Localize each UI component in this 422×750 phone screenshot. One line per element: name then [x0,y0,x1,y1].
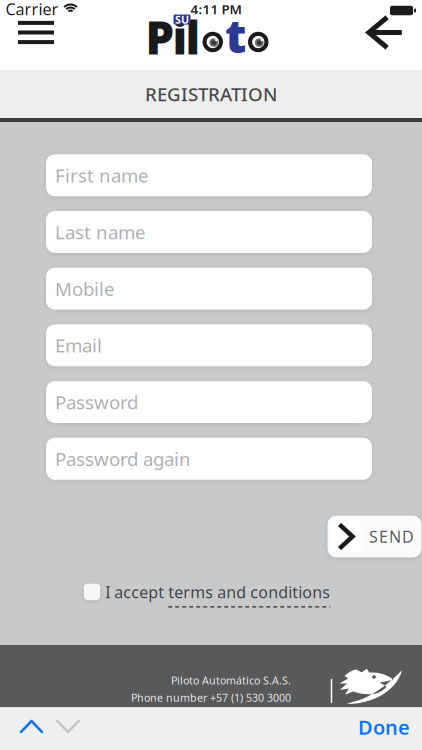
staticText: Done [358,714,410,740]
button[interactable]: Email [46,324,372,366]
button[interactable]: Last name [46,211,372,253]
staticText: SEND [369,526,414,547]
staticText: Pil [145,7,200,67]
staticText: Password again [55,446,191,471]
staticText: t [225,4,246,66]
staticText: Email [55,333,102,358]
staticText: Phone number +57 (1) 530 3000 [131,690,291,705]
staticText: Carrier [5,0,58,20]
staticText: 4:11 PM [190,0,241,18]
staticText: Last name [55,220,146,244]
button[interactable]: I accept [84,581,330,603]
button[interactable]: Previous field [21,721,42,732]
staticText: Mobile [55,276,115,301]
staticText: terms and conditions [168,581,330,603]
button[interactable]: Mobile [46,268,372,310]
staticText: REGISTRATION [145,82,277,106]
button[interactable]: Password [46,381,372,423]
staticText: I accept [105,581,168,603]
button[interactable]: Back [367,16,402,49]
button[interactable]: Done [358,714,410,740]
button[interactable]: First name [46,154,372,196]
staticText: SU [175,12,189,27]
button[interactable]: SEND [327,515,421,557]
staticText: Piloto Automático S.A.S. [171,673,291,687]
button[interactable]: Menu [18,21,54,44]
button[interactable]: Next field [57,721,78,732]
button[interactable]: Password again [46,438,372,480]
staticText: First name [55,163,149,188]
staticText: Password [55,390,138,414]
